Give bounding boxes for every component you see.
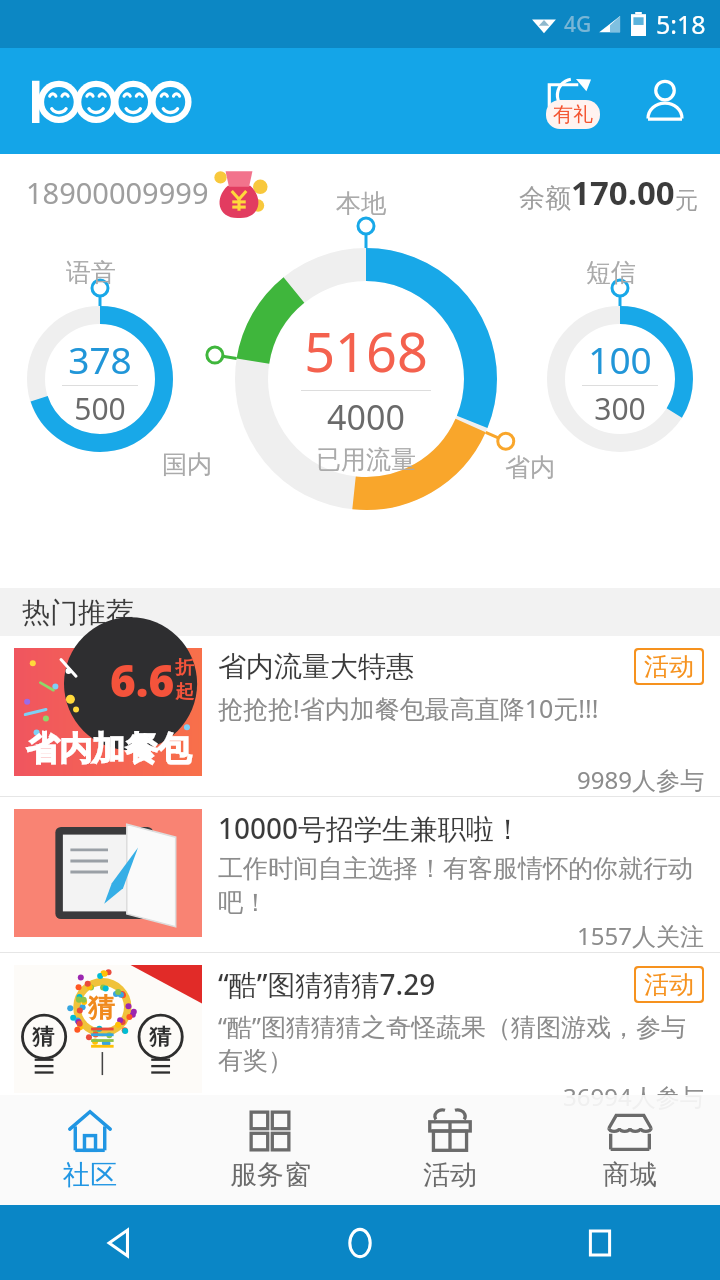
staticText: 国内 <box>162 449 212 480</box>
button[interactable]: Account <box>634 70 696 132</box>
staticText: 有礼 <box>553 102 593 127</box>
staticText: 省内加餐包 <box>26 728 191 770</box>
staticText: 猜 <box>88 991 115 1025</box>
staticText: 1557人关注 <box>577 919 704 952</box>
staticText: 4G <box>564 10 592 39</box>
button[interactable]: 10000号招学生兼职啦！ <box>0 797 720 952</box>
staticText: 短信 <box>586 257 636 288</box>
button[interactable]: 余额 <box>519 170 698 215</box>
button[interactable]: Back <box>0 1205 240 1280</box>
staticText: “酷”图猜猜猜之奇怪蔬果（猜图游戏，参与有奖） <box>218 1009 704 1077</box>
staticText: 服务窗 <box>230 1158 311 1192</box>
button[interactable]: 活动 <box>360 1095 540 1205</box>
staticText: 378 <box>68 334 132 384</box>
button[interactable]: 服务窗 <box>180 1095 360 1205</box>
button[interactable]: 商城 <box>540 1095 720 1205</box>
staticText: 本地 <box>336 188 386 219</box>
staticText: 热门推荐 <box>22 595 134 630</box>
staticText: 起 <box>175 680 194 704</box>
staticText: 4000 <box>327 394 405 440</box>
staticText: 已用流量 <box>316 444 416 475</box>
button[interactable]: Recents <box>480 1205 720 1280</box>
staticText: 9989人参与 <box>577 763 704 796</box>
staticText: 折 <box>175 656 194 680</box>
staticText: 猜 <box>32 1023 54 1051</box>
staticText: 商城 <box>603 1158 657 1192</box>
staticText: 元 <box>675 186 698 215</box>
staticText: 500 <box>74 388 126 429</box>
staticText: 余额 <box>519 182 571 215</box>
staticText: 300 <box>594 388 646 429</box>
button[interactable]: 6.6 <box>0 636 720 796</box>
staticText: 6.6 <box>110 650 175 710</box>
button[interactable]: Home <box>240 1205 480 1280</box>
staticText: 5:18 <box>656 7 706 41</box>
staticText: 5168 <box>304 314 428 388</box>
staticText: 语音 <box>66 257 116 288</box>
staticText: 18900009999 <box>26 173 209 212</box>
staticText: 省内流量大特惠 <box>218 649 414 684</box>
staticText: 170.00 <box>571 170 675 215</box>
staticText: 活动 <box>644 651 694 682</box>
staticText: 活动 <box>423 1158 477 1192</box>
staticText: 抢抢抢!省内加餐包最高直降10元!!! <box>218 691 599 725</box>
staticText: “酷”图猜猜猜7.29 <box>218 965 436 1003</box>
staticText: 猜 <box>149 1023 171 1051</box>
staticText: 省内 <box>505 452 555 483</box>
staticText: 社区 <box>63 1158 117 1192</box>
button[interactable]: Share for gift <box>532 64 606 138</box>
staticText: 10000号招学生兼职啦！ <box>218 809 523 847</box>
button[interactable]: 社区 <box>0 1095 180 1205</box>
staticText: 100 <box>588 334 652 384</box>
staticText: 活动 <box>644 969 694 1000</box>
staticText: 工作时间自主选择！有客服情怀的你就行动吧！ <box>218 853 704 919</box>
button[interactable]: 猜 <box>0 953 720 1113</box>
staticText: 36994人参与 <box>563 1080 704 1113</box>
